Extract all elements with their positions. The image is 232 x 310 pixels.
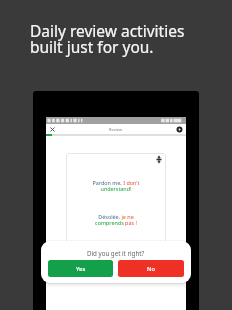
staticText: Daily review activities built just for y…: [30, 20, 185, 57]
staticText: Pardon me, I don't understand!: [92, 179, 140, 193]
button[interactable]: Yes: [48, 260, 113, 277]
staticText: Désolée, je ne comprends pas !: [92, 213, 140, 227]
button[interactable]: Audio settings: [176, 126, 183, 133]
staticText: Did you get it right?: [87, 249, 145, 257]
button[interactable]: Close: [48, 125, 57, 134]
staticText: No: [147, 265, 156, 273]
button[interactable]: Swap languages: [156, 155, 162, 164]
staticText: Yes: [76, 265, 86, 273]
button[interactable]: No: [118, 260, 184, 277]
staticText: Review: [109, 127, 123, 132]
